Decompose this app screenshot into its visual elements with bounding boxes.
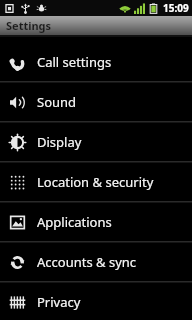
button[interactable]: Applications <box>0 203 192 241</box>
staticText: Sound <box>37 93 77 111</box>
staticText: Privacy <box>37 293 81 311</box>
staticText: Settings <box>6 18 52 33</box>
staticText: Location & security <box>37 173 154 191</box>
staticText: Display <box>37 133 82 151</box>
button[interactable]: Display <box>0 123 192 161</box>
staticText: 15:09 <box>163 1 189 15</box>
button[interactable]: Sound <box>0 83 192 121</box>
button[interactable]: Location & security <box>0 163 192 201</box>
button[interactable]: Privacy <box>0 283 192 320</box>
button[interactable]: Call settings <box>0 43 192 81</box>
staticText: Applications <box>37 213 112 231</box>
staticText: Accounts & sync <box>37 253 137 271</box>
staticText: Call settings <box>37 53 112 71</box>
button[interactable]: Accounts & sync <box>0 243 192 281</box>
